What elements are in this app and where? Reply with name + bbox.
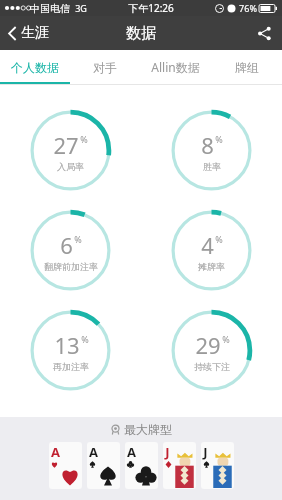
staticText: 76%: [239, 2, 257, 14]
button[interactable]: J: [201, 442, 234, 489]
button[interactable]: A: [49, 442, 82, 489]
staticText: A: [51, 443, 60, 461]
button[interactable]: A: [125, 442, 158, 489]
staticText: 牌组: [235, 60, 259, 75]
staticText: 个人数据: [11, 60, 59, 75]
button[interactable]: Allin数据: [140, 50, 211, 84]
staticText: A: [89, 443, 98, 461]
staticText: 对手: [93, 60, 117, 75]
button[interactable]: 8: [141, 100, 282, 200]
staticText: 翻牌前加注率: [44, 261, 98, 272]
staticText: 胜率: [203, 161, 221, 172]
staticText: 中国电信: [30, 2, 70, 15]
staticText: %: [222, 333, 230, 345]
button[interactable]: 对手: [70, 50, 140, 84]
staticText: 摊牌率: [198, 261, 225, 272]
staticText: 27: [53, 130, 79, 160]
button[interactable]: Share: [246, 16, 282, 50]
staticText: 3G: [75, 2, 87, 14]
button[interactable]: 6: [0, 200, 141, 300]
staticText: J: [203, 443, 208, 461]
staticText: 29: [195, 330, 221, 360]
button[interactable]: 生涯: [0, 16, 57, 50]
button[interactable]: J: [163, 442, 196, 489]
staticText: %: [81, 333, 89, 345]
staticText: 持续下注: [194, 361, 230, 372]
button[interactable]: 牌组: [211, 50, 282, 84]
staticText: %: [215, 233, 223, 245]
staticText: J: [165, 443, 170, 461]
button[interactable]: A: [87, 442, 120, 489]
staticText: A: [127, 443, 136, 461]
button[interactable]: 29: [141, 300, 282, 400]
button[interactable]: 27: [0, 100, 141, 200]
button[interactable]: 个人数据: [0, 50, 70, 84]
staticText: %: [215, 133, 223, 145]
staticText: %: [74, 233, 82, 245]
staticText: 入局率: [57, 161, 84, 172]
staticText: Allin数据: [151, 59, 200, 75]
staticText: 8: [201, 130, 214, 160]
staticText: 4: [201, 230, 214, 260]
staticText: 数据: [126, 24, 156, 43]
staticText: 生涯: [21, 24, 49, 42]
button[interactable]: 4: [141, 200, 282, 300]
staticText: 下午12:26: [128, 1, 174, 15]
staticText: 最大牌型: [124, 422, 172, 437]
staticText: 再加注率: [53, 361, 89, 372]
button[interactable]: 13: [0, 300, 141, 400]
staticText: %: [80, 133, 88, 145]
staticText: 6: [60, 230, 73, 260]
staticText: 13: [54, 330, 80, 360]
